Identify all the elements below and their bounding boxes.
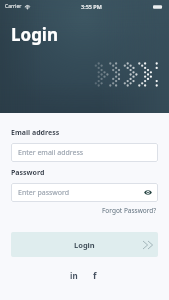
staticText: Email address bbox=[11, 128, 60, 138]
button[interactable]: LinkedIn bbox=[67, 268, 81, 282]
button[interactable]: Facebook bbox=[88, 268, 102, 282]
staticText: Login bbox=[74, 240, 95, 250]
button[interactable]: Login bbox=[11, 232, 158, 257]
staticText: Password bbox=[11, 168, 45, 178]
staticText: Enter email address bbox=[18, 148, 84, 158]
staticText: Carrier bbox=[5, 3, 22, 10]
button[interactable]: Show password bbox=[142, 187, 153, 198]
staticText: Enter password bbox=[18, 188, 70, 198]
button[interactable]: Enter email address bbox=[11, 143, 158, 162]
staticText: 3:55 PM bbox=[81, 3, 102, 10]
staticText: f bbox=[93, 269, 97, 281]
button[interactable]: Enter password bbox=[11, 183, 158, 202]
button[interactable]: Forgot Password? bbox=[101, 205, 158, 216]
staticText: in bbox=[70, 270, 78, 281]
staticText: Login bbox=[11, 23, 59, 46]
